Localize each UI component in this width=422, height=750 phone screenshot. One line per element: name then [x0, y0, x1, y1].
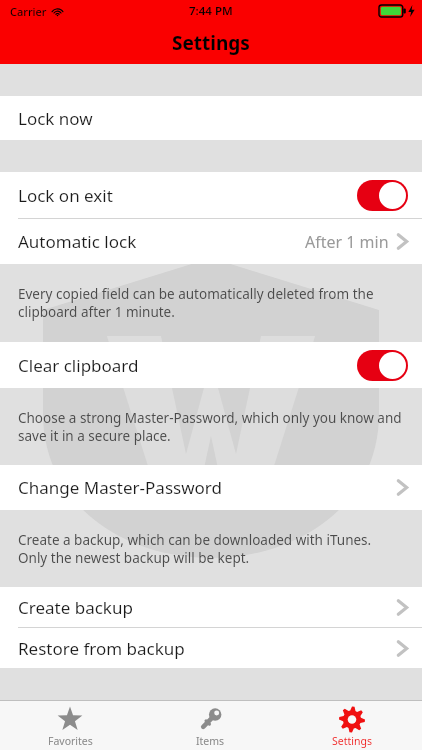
staticText: 7:44 PM [189, 3, 233, 19]
staticText: Choose a strong Master-Password, which o… [18, 409, 402, 445]
button[interactable]: Settings [281, 701, 422, 750]
staticText: Carrier [10, 4, 47, 19]
staticText: Lock now [18, 107, 93, 130]
staticText: Lock on exit [18, 184, 113, 207]
staticText: Settings [172, 30, 250, 56]
button[interactable]: Items [140, 701, 281, 750]
staticText: Clear clipboard [18, 354, 139, 377]
button[interactable]: Lock on exit [0, 172, 422, 218]
staticText: Create a backup, which can be downloaded… [18, 531, 402, 567]
button[interactable]: Clear clipboard [0, 342, 422, 388]
button[interactable]: Lock now [0, 96, 422, 140]
button[interactable]: Toggle Lock on exit [357, 180, 408, 211]
button[interactable]: Toggle Clear clipboard [357, 350, 408, 381]
button[interactable]: Automatic lock [0, 219, 422, 264]
staticText: After 1 min [305, 231, 389, 253]
button[interactable]: Change Master-Password [0, 465, 422, 510]
staticText: Settings [332, 734, 372, 748]
staticText: Change Master-Password [18, 476, 222, 499]
button[interactable]: Favorites [0, 701, 140, 750]
button[interactable]: Restore from backup [0, 628, 422, 668]
staticText: Create backup [18, 596, 133, 619]
staticText: Every copied field can be automatically … [18, 285, 402, 321]
staticText: Items [196, 734, 225, 748]
staticText: Favorites [48, 734, 93, 748]
staticText: Restore from backup [18, 637, 185, 660]
button[interactable]: Create backup [0, 587, 422, 627]
staticText: Automatic lock [18, 230, 137, 253]
